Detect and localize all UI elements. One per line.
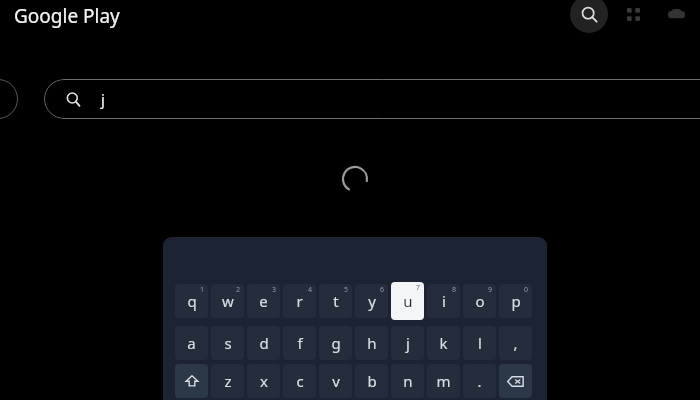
staticText: t (333, 291, 339, 311)
staticText: 6 (380, 285, 385, 295)
button[interactable]: i (427, 284, 460, 318)
button[interactable]: z (211, 364, 244, 398)
staticText: . (477, 371, 482, 391)
staticText: n (403, 371, 413, 391)
staticText: o (475, 291, 485, 311)
staticText: h (367, 333, 377, 353)
staticText: k (439, 333, 448, 353)
staticText: w (222, 291, 234, 311)
staticText: p (511, 291, 521, 311)
button[interactable]: Games (665, 3, 687, 25)
button[interactable]: u (391, 282, 424, 320)
staticText: s (224, 333, 232, 353)
staticText: d (259, 333, 269, 353)
staticText: 1 (200, 285, 205, 295)
staticText: l (478, 333, 482, 353)
staticText: 2 (236, 285, 241, 295)
staticText: a (187, 333, 196, 353)
button[interactable]: x (247, 364, 280, 398)
staticText: x (260, 371, 268, 391)
button[interactable]: e (247, 284, 280, 318)
button[interactable]: , (499, 326, 532, 360)
button[interactable]: l (463, 326, 496, 360)
staticText: i (442, 291, 446, 311)
button[interactable]: m (427, 364, 460, 398)
button[interactable]: a (175, 326, 208, 360)
button[interactable]: k (427, 326, 460, 360)
staticText: 4 (308, 285, 313, 295)
button[interactable]: h (355, 326, 388, 360)
staticText: 9 (488, 285, 493, 295)
button[interactable]: j (391, 326, 424, 360)
button[interactable] (499, 364, 532, 398)
staticText: j (101, 89, 105, 109)
button[interactable]: d (247, 326, 280, 360)
button[interactable]: Back (0, 79, 18, 119)
staticText: b (367, 371, 377, 391)
staticText: c (296, 371, 304, 391)
button[interactable]: j (44, 79, 700, 119)
staticText: 5 (344, 285, 349, 295)
staticText: , (513, 333, 518, 353)
button[interactable]: r (283, 284, 316, 318)
button[interactable]: v (319, 364, 352, 398)
staticText: f (297, 333, 303, 353)
button[interactable]: p (499, 284, 532, 318)
staticText: 0 (524, 285, 529, 295)
button[interactable] (175, 364, 208, 398)
staticText: Google Play (14, 3, 120, 29)
button[interactable]: b (355, 364, 388, 398)
staticText: e (259, 291, 268, 311)
button[interactable]: c (283, 364, 316, 398)
button[interactable]: n (391, 364, 424, 398)
staticText: g (331, 333, 341, 353)
button[interactable]: s (211, 326, 244, 360)
staticText: j (406, 333, 410, 353)
staticText: u (403, 291, 413, 311)
staticText: m (436, 371, 451, 391)
button[interactable]: f (283, 326, 316, 360)
staticText: q (187, 291, 197, 311)
staticText: z (224, 371, 232, 391)
button[interactable]: q (175, 284, 208, 318)
button[interactable]: o (463, 284, 496, 318)
button[interactable]: Apps (622, 3, 644, 25)
staticText: v (332, 371, 340, 391)
staticText: 3 (272, 285, 277, 295)
button[interactable]: Search (570, 0, 608, 33)
button[interactable]: . (463, 364, 496, 398)
staticText: 8 (452, 285, 457, 295)
button[interactable]: t (319, 284, 352, 318)
staticText: r (296, 291, 303, 311)
staticText: y (368, 291, 376, 311)
button[interactable]: w (211, 284, 244, 318)
button[interactable]: y (355, 284, 388, 318)
button[interactable]: g (319, 326, 352, 360)
staticText: 7 (416, 283, 421, 293)
